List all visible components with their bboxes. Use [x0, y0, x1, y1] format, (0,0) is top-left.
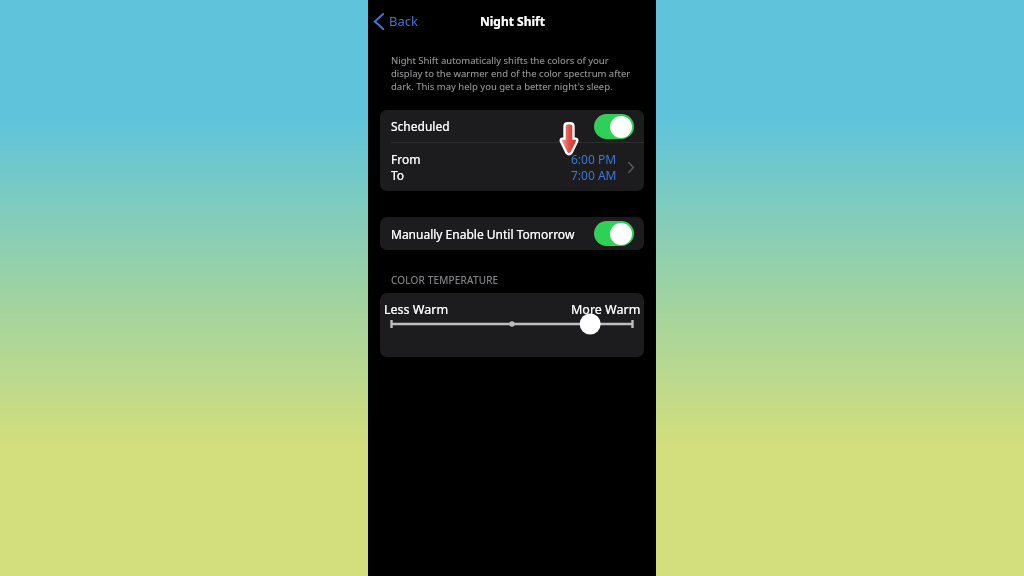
button[interactable]: Back: [373, 9, 419, 33]
button[interactable]: From: [380, 143, 644, 191]
staticText: COLOR TEMPERATURE: [391, 273, 499, 287]
button[interactable]: Scheduled on: [594, 114, 634, 139]
staticText: More Warm: [571, 301, 641, 318]
staticText: Back: [389, 12, 418, 30]
staticText: Manually Enable Until Tomorrow: [391, 226, 575, 242]
staticText: 7:00 AM: [571, 167, 617, 183]
button[interactable]: Manually Enable Until Tomorrow: [380, 217, 644, 250]
staticText: From: [391, 151, 421, 167]
button[interactable]: Manually enable until tomorrow on: [594, 221, 634, 246]
staticText: 6:00 PM: [571, 151, 617, 167]
staticText: Night Shift automatically shifts the col…: [391, 54, 639, 93]
button[interactable]: Scheduled: [380, 110, 644, 142]
staticText: Less Warm: [384, 301, 449, 318]
staticText: Scheduled: [391, 118, 450, 134]
staticText: To: [391, 167, 405, 183]
button[interactable]: Color temperature slider: [380, 313, 644, 335]
staticText: Night Shift: [480, 13, 545, 29]
